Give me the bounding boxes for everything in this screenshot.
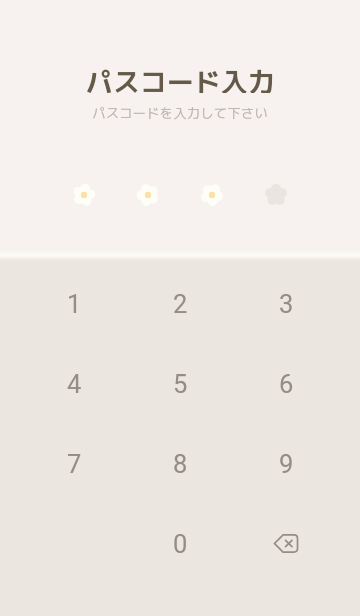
staticText: 4 [67, 369, 82, 399]
button[interactable]: 0 [127, 502, 233, 582]
button[interactable]: 1 [21, 262, 127, 342]
staticText: 3 [279, 289, 294, 319]
staticText: 0 [173, 529, 188, 559]
staticText: 6 [279, 369, 294, 399]
button[interactable]: 9 [233, 422, 339, 502]
button[interactable]: 3 [233, 262, 339, 342]
button[interactable]: 2 [127, 262, 233, 342]
button[interactable]: Delete [233, 502, 339, 582]
other: Delete [271, 527, 301, 557]
staticText: 2 [173, 289, 188, 319]
staticText: パスコード入力 [86, 63, 275, 93]
staticText: 7 [67, 449, 82, 479]
staticText: 1 [67, 289, 82, 319]
staticText: 5 [173, 369, 188, 399]
button[interactable]: 7 [21, 422, 127, 502]
staticText: 8 [173, 449, 188, 479]
button[interactable]: 5 [127, 342, 233, 422]
button[interactable]: 8 [127, 422, 233, 502]
button[interactable]: 6 [233, 342, 339, 422]
staticText: パスコードを入力して下さい [92, 103, 268, 122]
button[interactable]: 4 [21, 342, 127, 422]
staticText: 9 [279, 449, 294, 479]
